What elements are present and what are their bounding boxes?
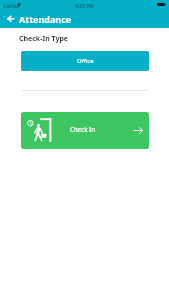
button[interactable]: Office — [21, 51, 149, 71]
staticText: Attendance — [19, 13, 72, 25]
staticText: 4:25 PM — [75, 3, 94, 10]
staticText: Check In — [70, 125, 96, 133]
staticText: Office — [77, 57, 94, 65]
staticText: Carrier — [3, 3, 20, 10]
button[interactable]: Back — [4, 12, 18, 26]
staticText: Check-In Type — [19, 34, 69, 44]
button[interactable]: Check In — [21, 112, 149, 149]
